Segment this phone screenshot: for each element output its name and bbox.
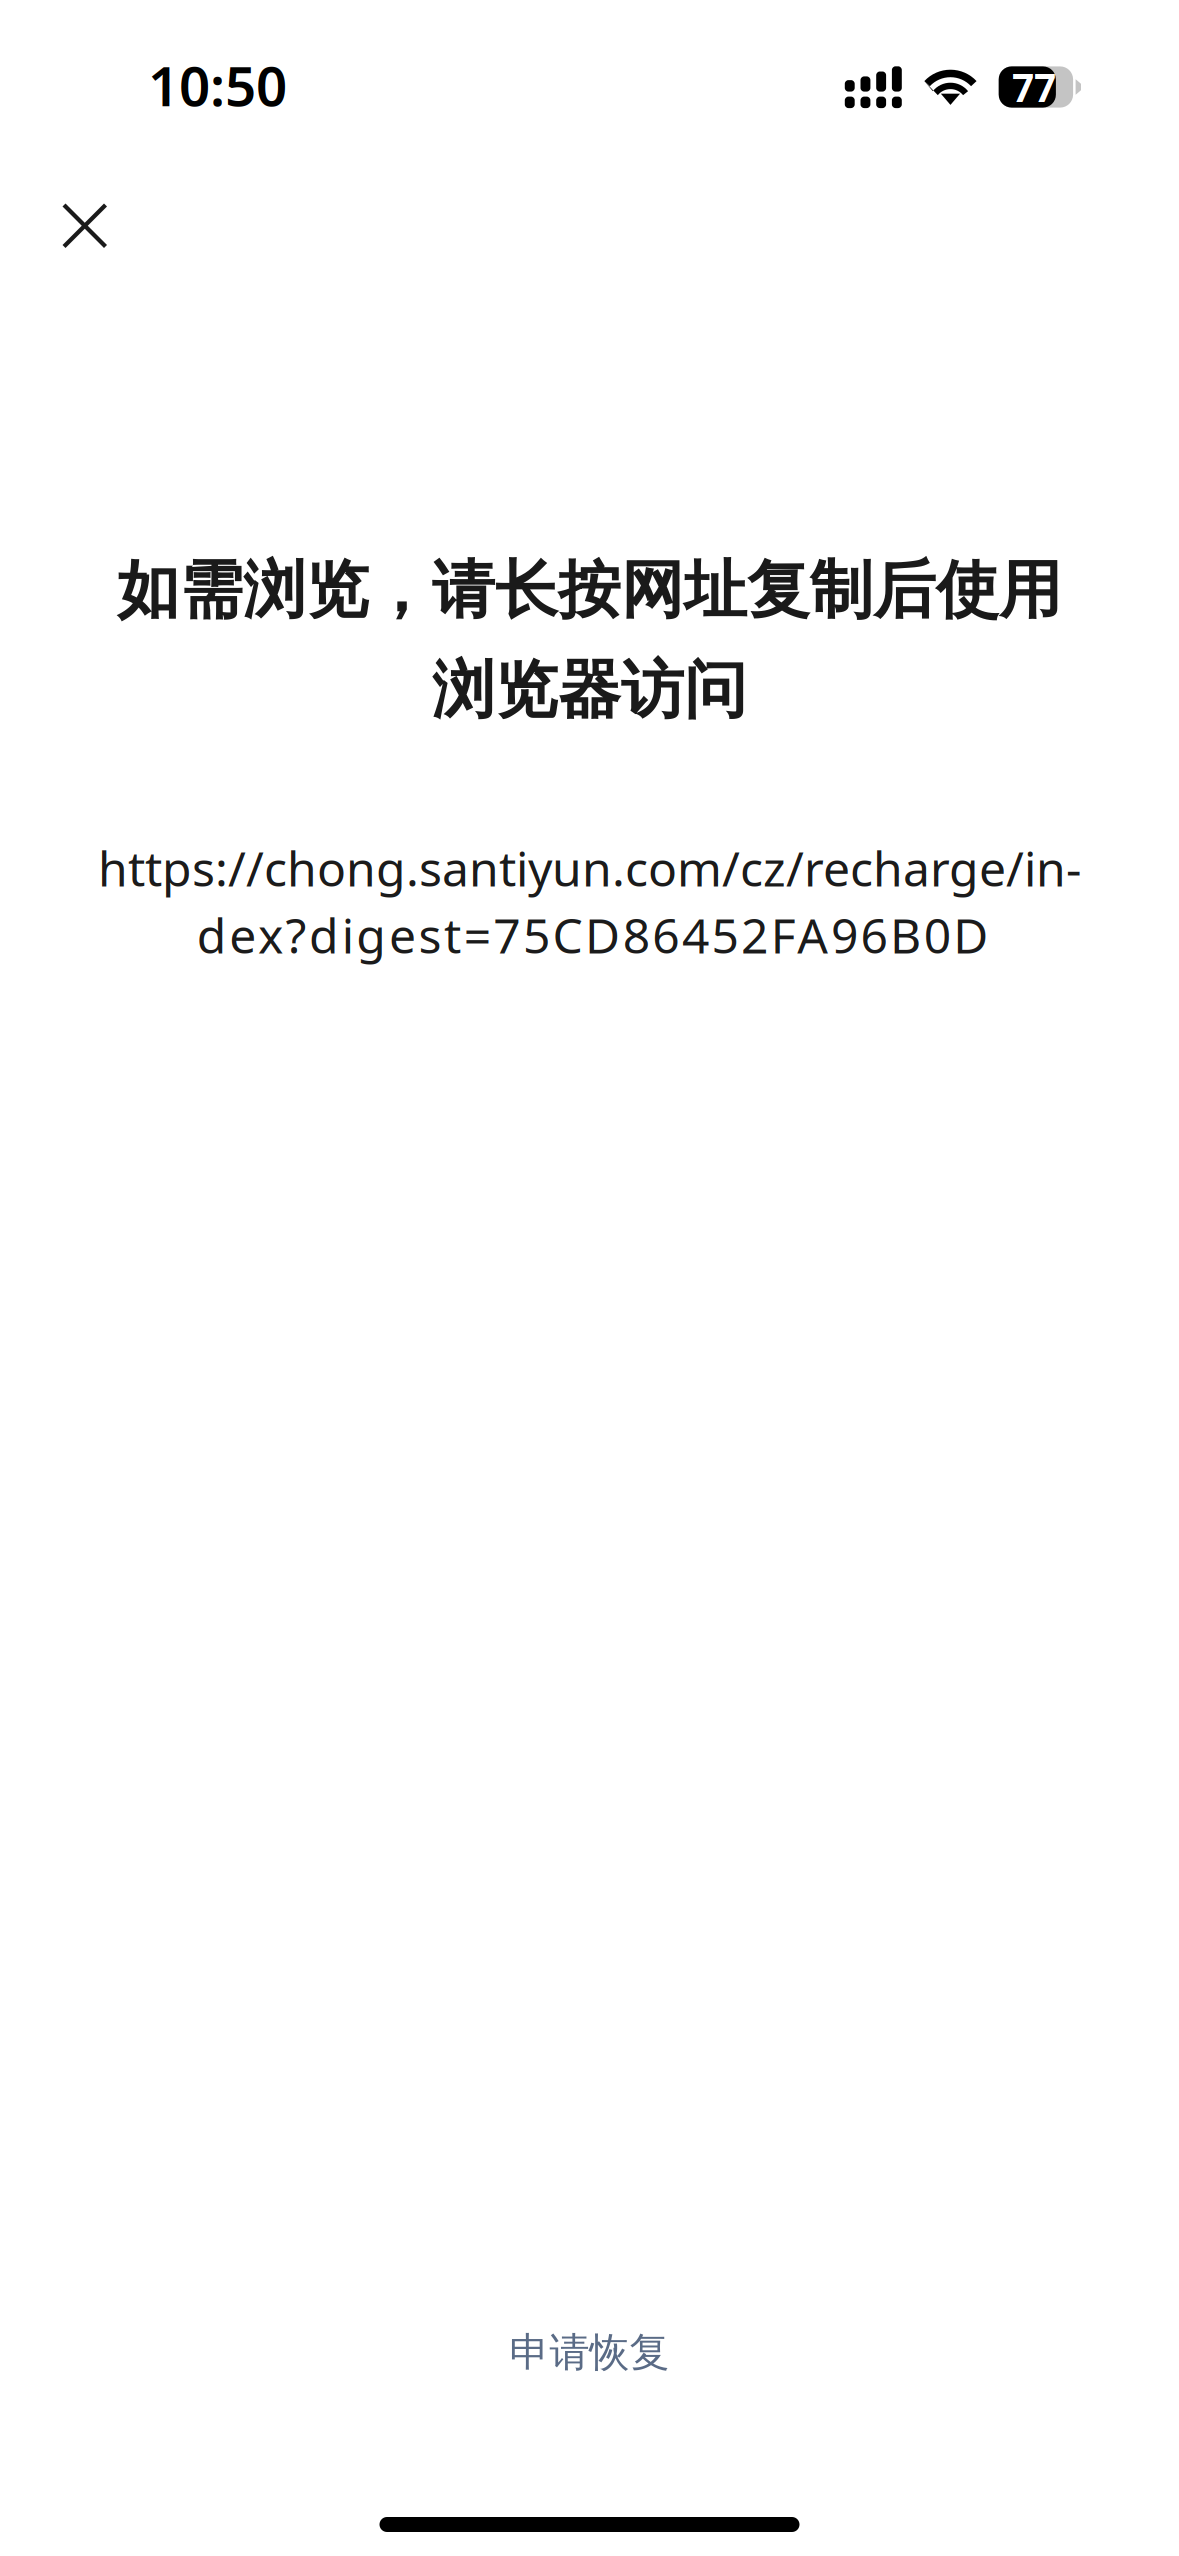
button[interactable]: Close [0, 170, 145, 281]
button[interactable]: https://chong.santiyun.com/cz/recharge/i… [0, 834, 1179, 968]
staticText: 77 [1012, 61, 1056, 113]
staticText: 申请恢复 [509, 2328, 669, 2377]
staticText: dex?digest=75CD86452FA96B0D [197, 903, 988, 967]
staticText: https://chong.santiyun.com/cz/recharge/i… [98, 836, 1081, 900]
staticText: 10:50 [148, 49, 287, 121]
staticText: 浏览器访问 [432, 652, 747, 729]
button[interactable]: 申请恢复 [463, 2304, 715, 2401]
staticText: 如需浏览，请长按网址复制后使用 [117, 552, 1062, 629]
